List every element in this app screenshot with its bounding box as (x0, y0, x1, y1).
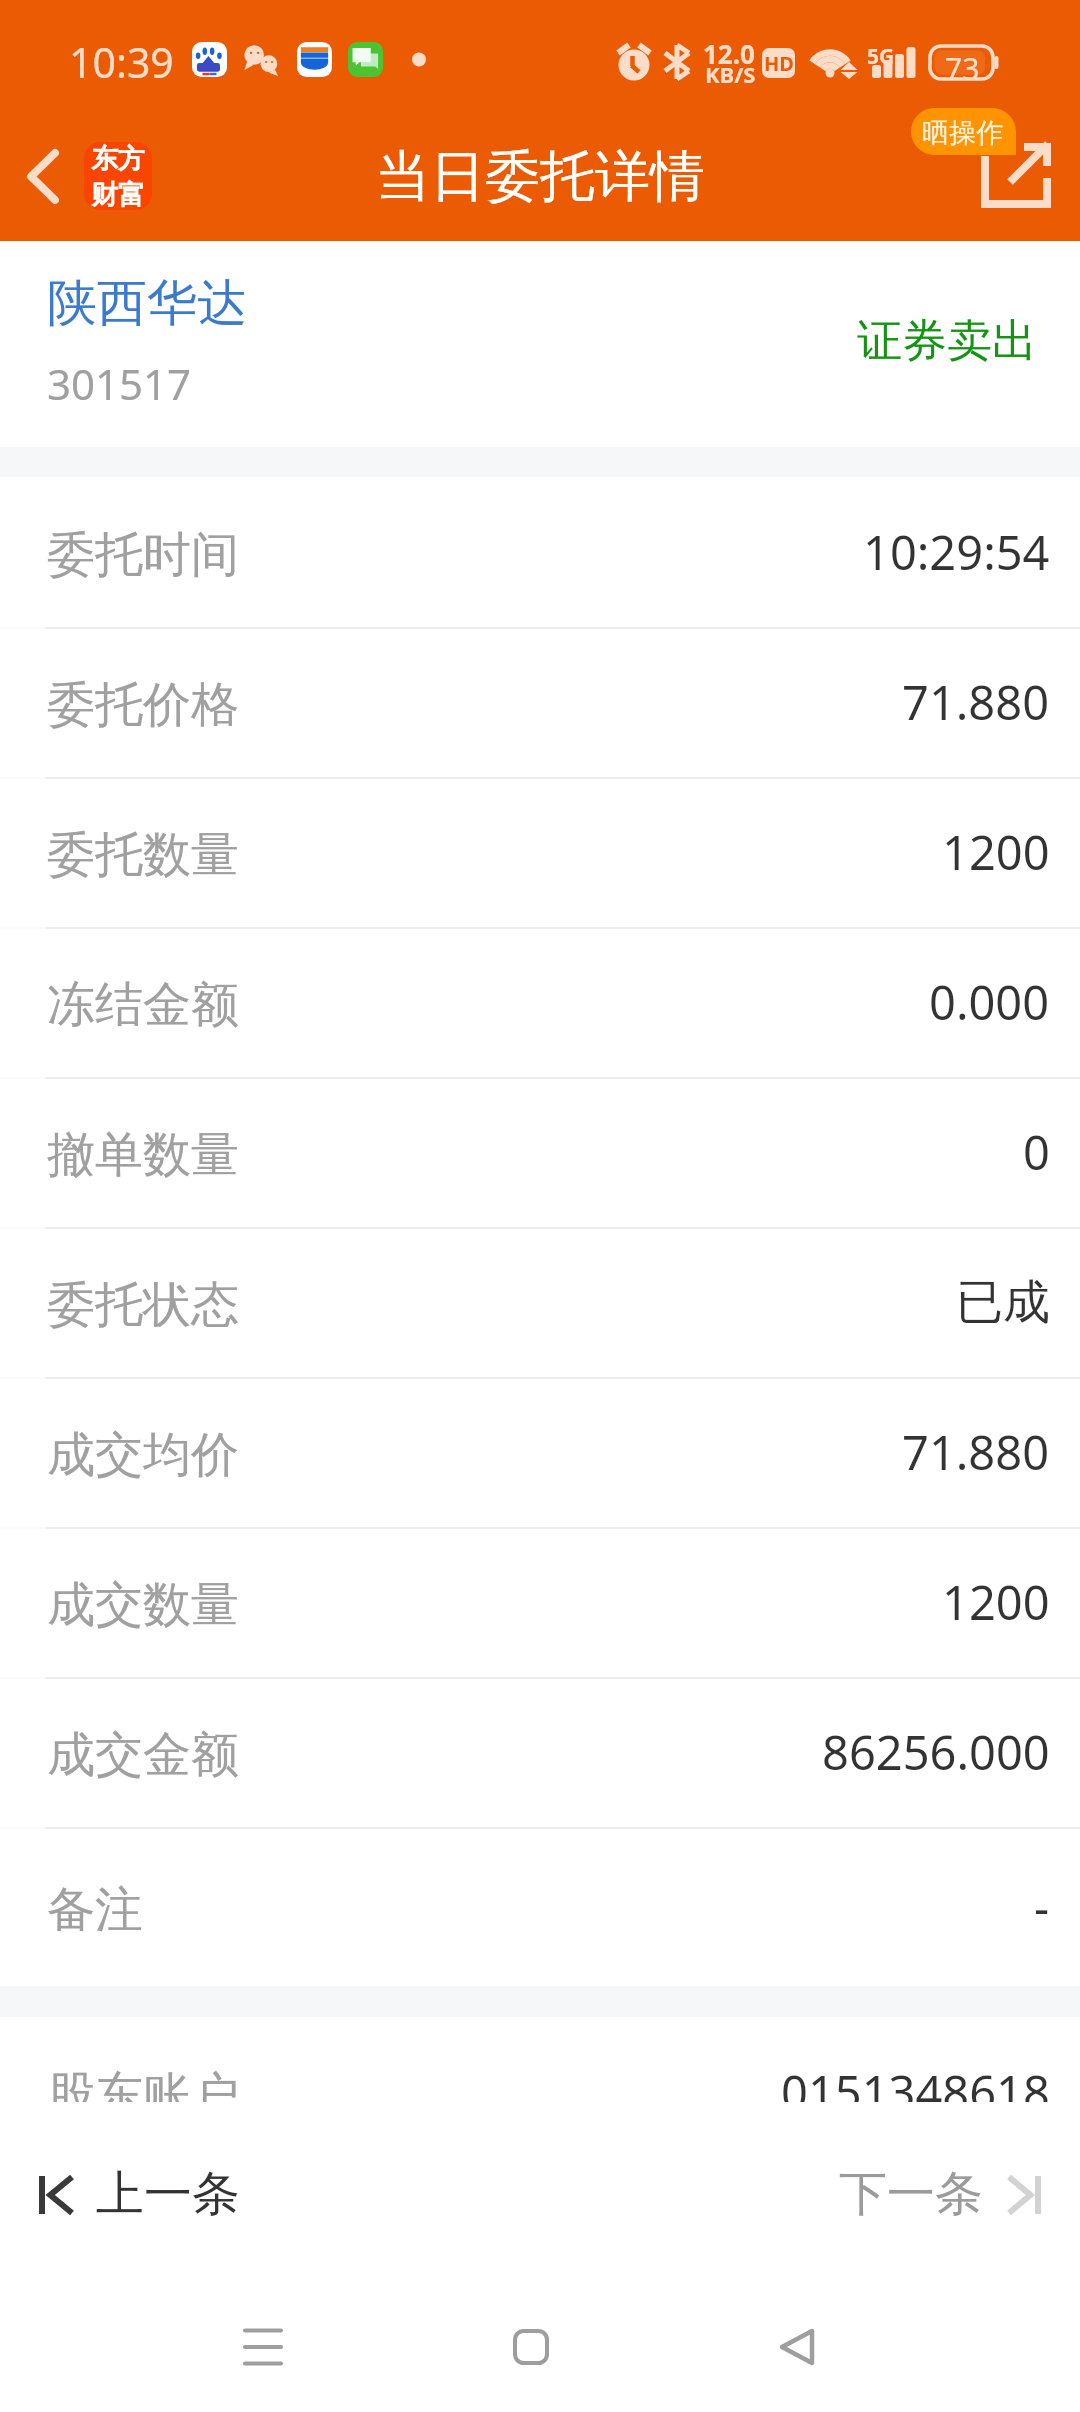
button[interactable]: Back (744, 2299, 850, 2395)
staticText: 10:39 (69, 34, 174, 90)
button[interactable]: Share (968, 110, 1068, 241)
staticText: 陕西华达 (47, 272, 247, 335)
staticText: 71.880 (902, 1420, 1050, 1484)
button[interactable]: Back (0, 133, 86, 219)
staticText: 5G (867, 42, 895, 71)
staticText: 东方 (91, 142, 145, 176)
staticText: - (1034, 1875, 1050, 1939)
button[interactable]: 下一条 (820, 2102, 1060, 2260)
staticText: 73 (945, 48, 980, 89)
staticText: 委托价格 (47, 675, 239, 735)
staticText: 委托时间 (47, 525, 239, 585)
button[interactable]: 成交数量 (0, 1527, 1080, 1677)
button[interactable]: 备注 (0, 1827, 1080, 1986)
button[interactable]: 成交均价 (0, 1377, 1080, 1527)
staticText: 委托数量 (47, 825, 239, 885)
staticText: 成交数量 (47, 1575, 239, 1635)
button[interactable]: 成交金额 (0, 1677, 1080, 1827)
staticText: KB/S (705, 59, 756, 89)
staticText: 财富 (91, 178, 145, 210)
staticText: 证券卖出 (857, 313, 1037, 370)
staticText: 上一条 (96, 2164, 240, 2224)
button[interactable]: 委托时间 (0, 477, 1080, 627)
staticText: 1200 (942, 820, 1050, 884)
button[interactable]: 上一条 (20, 2102, 260, 2260)
button[interactable]: 委托状态 (0, 1227, 1080, 1377)
staticText: 301517 (47, 355, 192, 412)
staticText: 10:29:54 (863, 520, 1050, 584)
staticText: 已成 (956, 1273, 1050, 1332)
staticText: 71.880 (902, 670, 1050, 734)
button[interactable]: 委托数量 (0, 777, 1080, 927)
staticText: 备注 (47, 1880, 143, 1940)
staticText: 成交金额 (47, 1725, 239, 1785)
staticText: 当日委托详情 (375, 142, 705, 211)
staticText: 86256.000 (822, 1720, 1050, 1784)
button[interactable]: Home (478, 2299, 584, 2395)
staticText: 冻结金额 (47, 975, 239, 1035)
staticText: 0 (1023, 1120, 1050, 1184)
button[interactable]: 委托价格 (0, 627, 1080, 777)
button[interactable]: 撤单数量 (0, 1077, 1080, 1227)
button[interactable]: East Money (84, 142, 152, 210)
button[interactable]: Recent apps (210, 2299, 316, 2395)
staticText: 0.000 (929, 970, 1050, 1034)
staticText: 委托状态 (47, 1275, 239, 1335)
button[interactable]: 陕西华达 (0, 241, 1080, 447)
staticText: 股东账户 (47, 2065, 239, 2125)
staticText: 12.0 (703, 36, 755, 71)
staticText: HD (764, 50, 794, 77)
staticText: 成交均价 (47, 1425, 239, 1485)
staticText: 0151348618 (781, 2060, 1050, 2124)
staticText: 撤单数量 (47, 1125, 239, 1185)
staticText: 1200 (942, 1570, 1050, 1634)
button[interactable]: 冻结金额 (0, 927, 1080, 1077)
staticText: 下一条 (839, 2164, 983, 2224)
button[interactable]: 股东账户 (0, 2017, 1080, 2167)
staticText: 晒操作 (922, 116, 1003, 150)
